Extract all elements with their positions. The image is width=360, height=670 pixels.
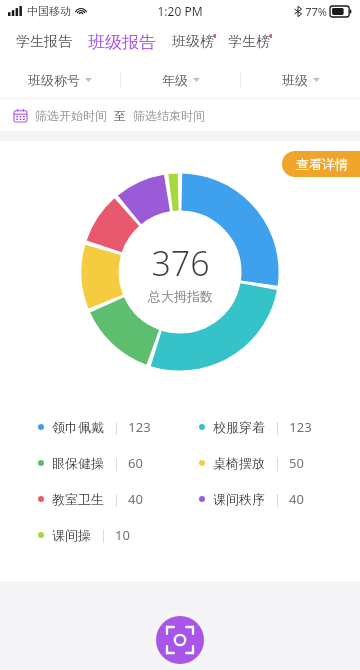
staticText: | — [274, 419, 281, 435]
button[interactable]: 班级 — [241, 62, 360, 98]
staticText: 领巾佩戴 — [52, 419, 104, 435]
button[interactable]: 筛选开始时间 — [0, 99, 360, 131]
staticText: | — [113, 455, 120, 471]
staticText: 总大拇指数 — [148, 288, 213, 304]
staticText: 眼保健操 — [52, 455, 104, 471]
staticText: | — [113, 419, 120, 435]
staticText: 376 — [151, 240, 210, 286]
button[interactable]: 校服穿着 — [199, 409, 360, 445]
staticText: 50 — [289, 454, 304, 472]
button[interactable]: 扫一扫 — [156, 616, 204, 664]
button[interactable]: 班级榜 — [170, 29, 216, 55]
staticText: 1:20 PM — [157, 3, 203, 19]
staticText: | — [274, 491, 281, 507]
staticText: 查看详情 — [296, 156, 348, 172]
button[interactable]: 学生榜 — [226, 29, 272, 55]
staticText: 班级榜 — [172, 33, 214, 51]
staticText: 40 — [128, 490, 143, 508]
staticText: 40 — [289, 490, 304, 508]
button[interactable]: 学生报告 — [14, 29, 74, 55]
button[interactable]: 班级报告 — [86, 28, 158, 57]
button[interactable]: 眼保健操 — [38, 445, 199, 481]
staticText: 123 — [289, 418, 312, 436]
staticText: 学生榜 — [228, 33, 270, 51]
staticText: 77% — [305, 4, 327, 19]
button[interactable]: 课间秩序 — [199, 481, 360, 517]
staticText: 班级称号 — [28, 72, 80, 88]
staticText: 年级 — [162, 72, 188, 88]
button[interactable]: 年级 — [121, 62, 240, 98]
button[interactable]: 桌椅摆放 — [199, 445, 360, 481]
button[interactable]: 领巾佩戴 — [38, 409, 199, 445]
staticText: 10 — [115, 526, 130, 544]
staticText: 至 — [114, 108, 126, 123]
staticText: 桌椅摆放 — [213, 455, 265, 471]
button[interactable]: 查看详情 — [282, 151, 360, 177]
staticText: 校服穿着 — [213, 419, 265, 435]
staticText: 筛选开始时间 — [35, 108, 107, 123]
button[interactable]: 课间操 — [38, 517, 199, 553]
staticText: 中国移动 — [27, 4, 71, 18]
staticText: | — [113, 491, 120, 507]
staticText: 123 — [128, 418, 151, 436]
staticText: | — [100, 527, 107, 543]
staticText: | — [274, 455, 281, 471]
staticText: 教室卫生 — [52, 491, 104, 507]
staticText: 班级 — [282, 72, 308, 88]
staticText: 学生报告 — [16, 33, 72, 51]
staticText: 课间操 — [52, 527, 91, 543]
staticText: 60 — [128, 454, 143, 472]
staticText: 班级报告 — [88, 32, 156, 53]
staticText: 筛选结束时间 — [133, 108, 205, 123]
button[interactable]: 教室卫生 — [38, 481, 199, 517]
button[interactable]: 班级称号 — [0, 62, 120, 98]
staticText: 课间秩序 — [213, 491, 265, 507]
